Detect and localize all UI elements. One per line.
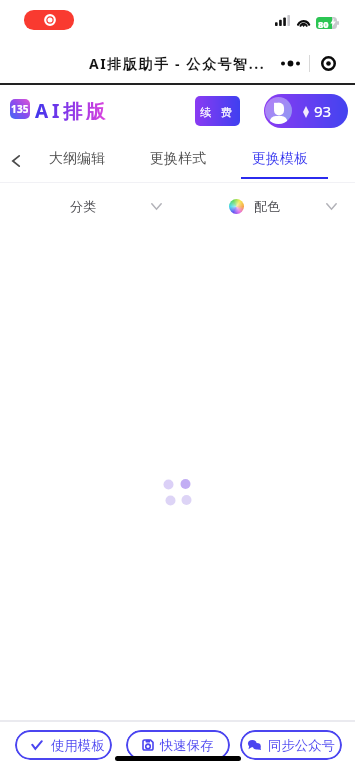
button[interactable]: Back xyxy=(3,148,28,173)
button[interactable]: 续 费 xyxy=(195,96,240,126)
staticText: 同步公众号 xyxy=(268,737,335,754)
staticText: 更换样式 xyxy=(150,150,206,168)
staticText: 93 xyxy=(314,101,332,121)
button[interactable]: 更换模板 xyxy=(234,139,326,179)
staticText: 快速保存 xyxy=(160,737,214,754)
button[interactable]: 快速保存 xyxy=(126,730,230,760)
button[interactable]: 93 xyxy=(264,94,348,128)
button[interactable]: 使用模板 xyxy=(15,730,112,760)
staticText: 分类 xyxy=(70,198,96,214)
staticText: 续 费 xyxy=(200,104,236,119)
staticText: 更换模板 xyxy=(252,150,308,168)
staticText: 使用模板 xyxy=(51,737,105,754)
button[interactable]: 配色 xyxy=(225,186,345,226)
staticText: 大纲编辑 xyxy=(49,150,105,168)
button[interactable]: 大纲编辑 xyxy=(31,139,123,179)
button[interactable]: 更换样式 xyxy=(132,139,224,179)
staticText: 80 xyxy=(318,18,329,29)
staticText: 配色 xyxy=(254,198,280,214)
button[interactable]: Close xyxy=(310,47,347,79)
button[interactable]: 同步公众号 xyxy=(240,730,342,760)
button[interactable]: 分类 xyxy=(50,186,175,226)
button[interactable]: More options xyxy=(272,47,309,79)
staticText: AI排版 xyxy=(35,98,109,124)
staticText: 135 xyxy=(11,102,29,116)
staticText: AI排版助手 - 公众号智... xyxy=(89,54,266,73)
